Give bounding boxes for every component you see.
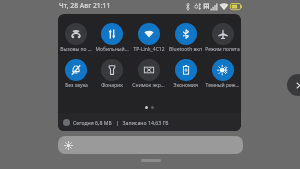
button[interactable]: Сегодня 6,8 МБ | Записано 14,63 ГБ xyxy=(63,113,241,131)
staticText: Без звука xyxy=(65,82,88,89)
button[interactable]: Темный режим xyxy=(204,59,241,88)
button[interactable]: Экономия xyxy=(167,59,204,88)
staticText: Сегодня 6,8 МБ | Записано 14,63 ГБ xyxy=(73,119,169,126)
staticText: Мобильный интернет xyxy=(95,46,129,53)
button[interactable]: Без звука xyxy=(58,59,94,88)
button[interactable]: Expand xyxy=(287,74,300,96)
button[interactable]: Снимок экрана xyxy=(130,59,167,88)
staticText: Bluetooth вкл xyxy=(169,46,202,53)
button[interactable]: Фонарик xyxy=(94,59,130,88)
button[interactable]: Brightness xyxy=(58,136,243,154)
button[interactable]: Вызовы по Wi-Fi xyxy=(58,23,94,52)
button[interactable]: TP-Link_4C12 xyxy=(130,23,167,52)
staticText: Экономия xyxy=(173,82,198,89)
staticText: Режим полета xyxy=(205,46,240,53)
staticText: Снимок экрана xyxy=(131,82,166,89)
button[interactable]: Bluetooth вкл xyxy=(167,23,204,52)
staticText: TP-Link_4C12 xyxy=(133,46,165,53)
staticText: Фонарик xyxy=(101,82,123,89)
button[interactable]: Мобильный интернет xyxy=(94,23,130,52)
staticText: Чт, 28 Авг 21:11 xyxy=(59,1,111,10)
staticText: Вызовы по Wi-Fi xyxy=(59,46,93,53)
staticText: Темный режим xyxy=(205,82,240,89)
button[interactable]: Режим полета xyxy=(204,23,241,52)
